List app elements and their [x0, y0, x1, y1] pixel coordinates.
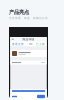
staticText: 商品详情 — [22, 38, 34, 41]
staticText: 支持查看、筛选、收藏与分享 — [9, 17, 48, 20]
staticText: 查看全部 — [12, 42, 24, 46]
staticText: 产品亮点 — [9, 9, 29, 16]
staticText: 已上架 — [36, 42, 45, 46]
